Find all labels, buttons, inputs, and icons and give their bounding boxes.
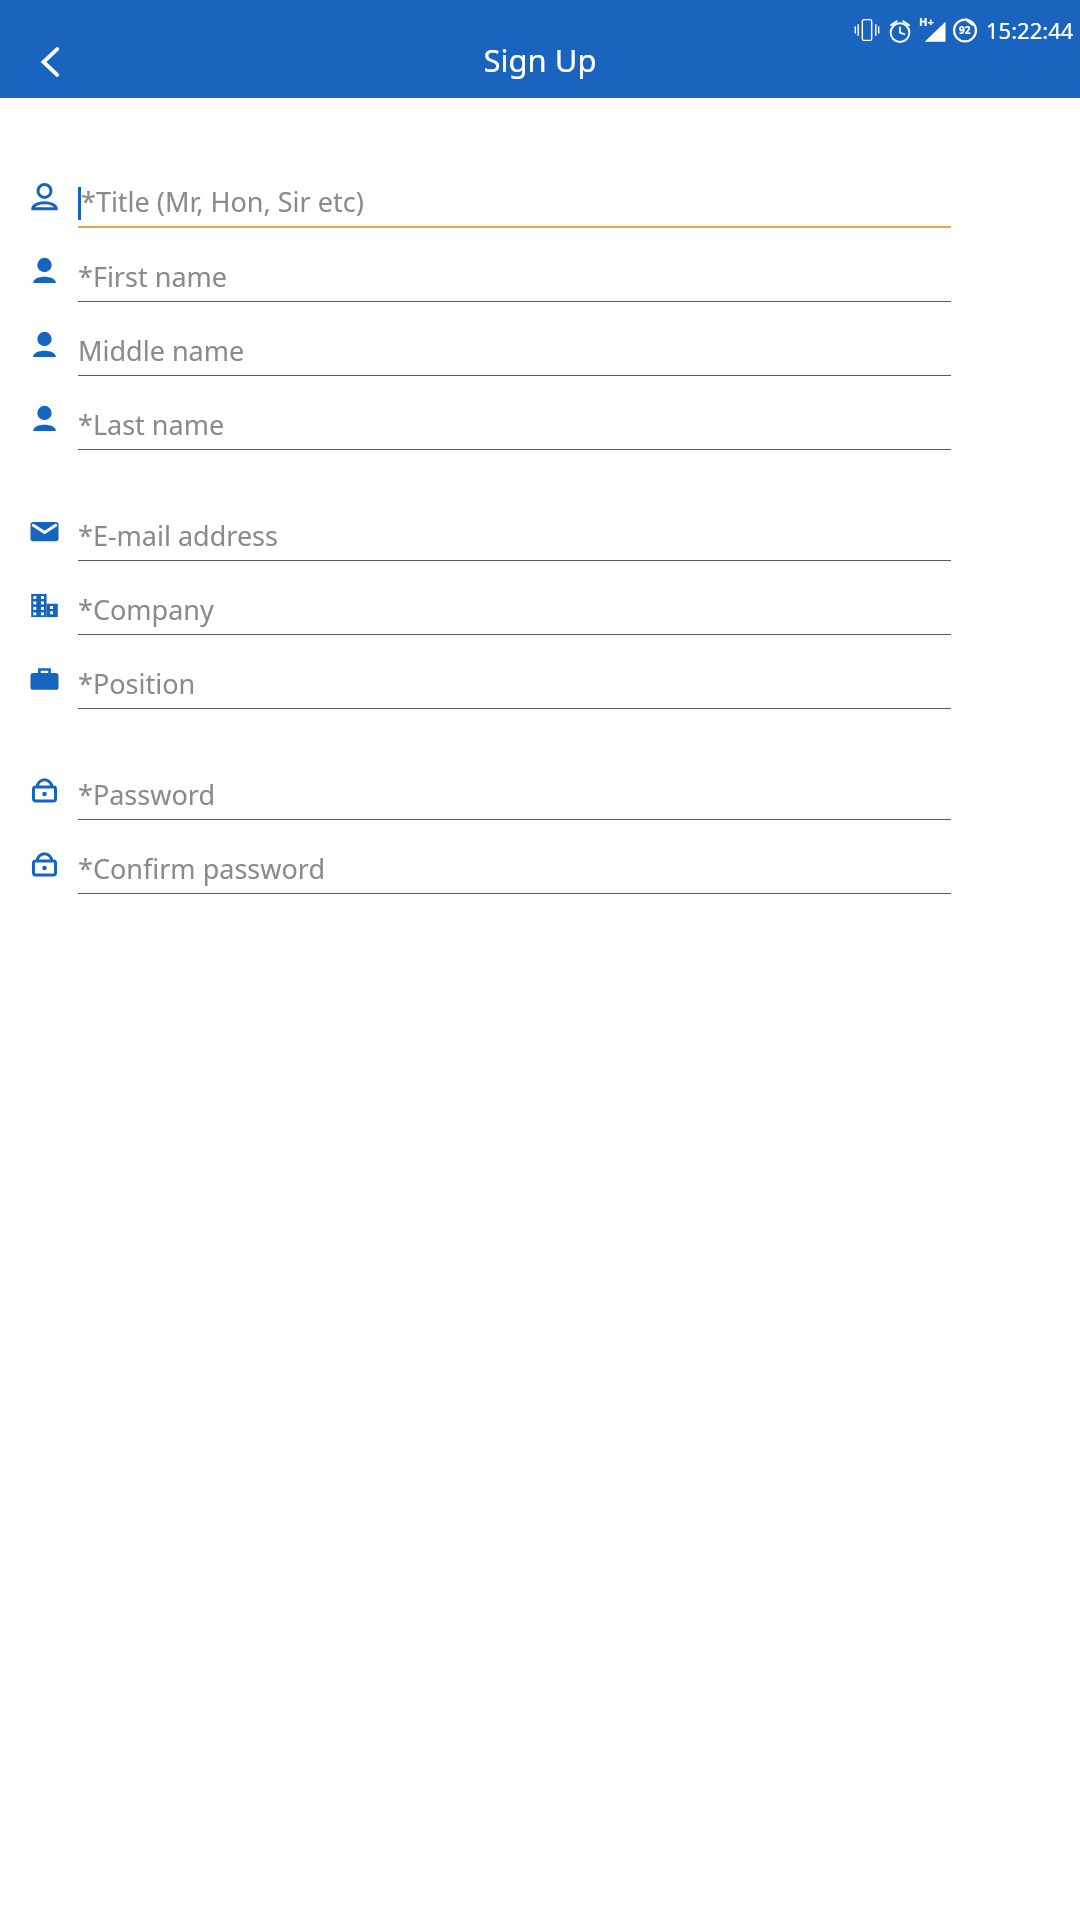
button[interactable]: Back (18, 29, 84, 95)
staticText: *Last name (78, 406, 225, 443)
button[interactable]: *Company (0, 561, 1080, 635)
staticText: H+ (919, 14, 934, 29)
staticText: *Password (78, 776, 215, 813)
staticText: *Company (78, 591, 214, 628)
button[interactable]: Middle name (0, 302, 1080, 376)
staticText: 92 (959, 23, 971, 37)
staticText: *Position (78, 665, 196, 702)
staticText: *Title (Mr, Hon, Sir etc) (81, 183, 364, 220)
button[interactable]: *Last name (0, 376, 1080, 450)
button[interactable]: *Confirm password (0, 820, 1080, 894)
button[interactable]: *E-mail address (0, 487, 1080, 561)
button[interactable]: *Title (Mr, Hon, Sir etc) (0, 154, 1080, 228)
button[interactable]: *Password (0, 746, 1080, 820)
staticText: *E-mail address (78, 517, 278, 554)
staticText: 15:22:44 (986, 15, 1074, 45)
staticText: *First name (78, 258, 228, 295)
staticText: *Confirm password (78, 850, 326, 887)
staticText: Middle name (78, 332, 245, 369)
button[interactable]: *First name (0, 228, 1080, 302)
button[interactable]: *Position (0, 635, 1080, 709)
staticText: Sign Up (483, 39, 597, 81)
